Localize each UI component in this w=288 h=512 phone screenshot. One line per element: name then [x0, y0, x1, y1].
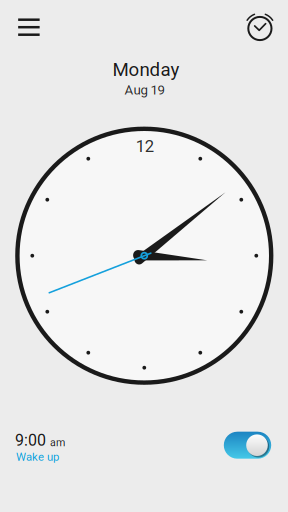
staticText: Aug 19 [124, 82, 164, 98]
button[interactable]: Alarms [232, 0, 288, 56]
staticText: 12 [136, 136, 154, 156]
staticText: Wake up [16, 450, 59, 464]
button[interactable]: Menu [0, 0, 57, 54]
button[interactable]: Toggle alarm [214, 422, 281, 469]
staticText: am [50, 436, 65, 449]
staticText: 9:00 [15, 431, 46, 450]
staticText: Monday [112, 59, 179, 80]
